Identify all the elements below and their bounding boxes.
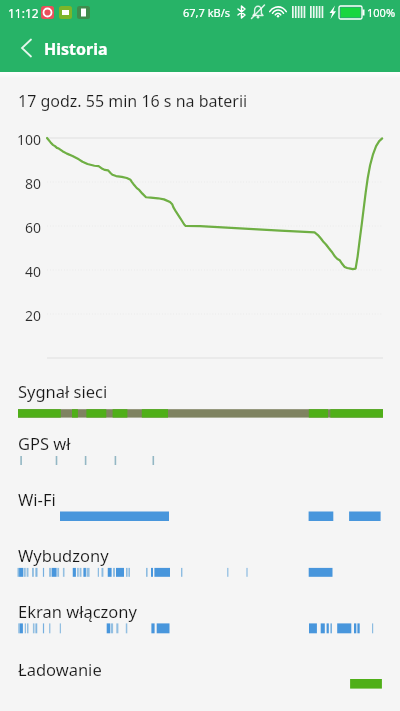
staticText: 100 bbox=[17, 130, 42, 149]
staticText: Ładowanie bbox=[18, 658, 102, 680]
staticText: Ekran włączony bbox=[18, 600, 137, 622]
staticText: Wybudzony bbox=[18, 544, 109, 566]
staticText: Wi-Fi bbox=[18, 488, 56, 510]
staticText: 80 bbox=[25, 174, 42, 193]
staticText: 17 godz. 55 min 16 s na baterii bbox=[18, 90, 248, 112]
staticText: 67,7 kB/s bbox=[183, 5, 231, 20]
staticText: Sygnał sieci bbox=[18, 380, 108, 402]
button[interactable]: Back bbox=[6, 28, 46, 68]
staticText: 40 bbox=[25, 262, 42, 281]
staticText: 60 bbox=[25, 218, 42, 237]
staticText: 100% bbox=[367, 5, 396, 20]
staticText: 20 bbox=[25, 306, 42, 325]
staticText: Historia bbox=[44, 38, 108, 60]
staticText: 11:12 bbox=[8, 5, 39, 21]
staticText: GPS wł bbox=[18, 432, 71, 454]
